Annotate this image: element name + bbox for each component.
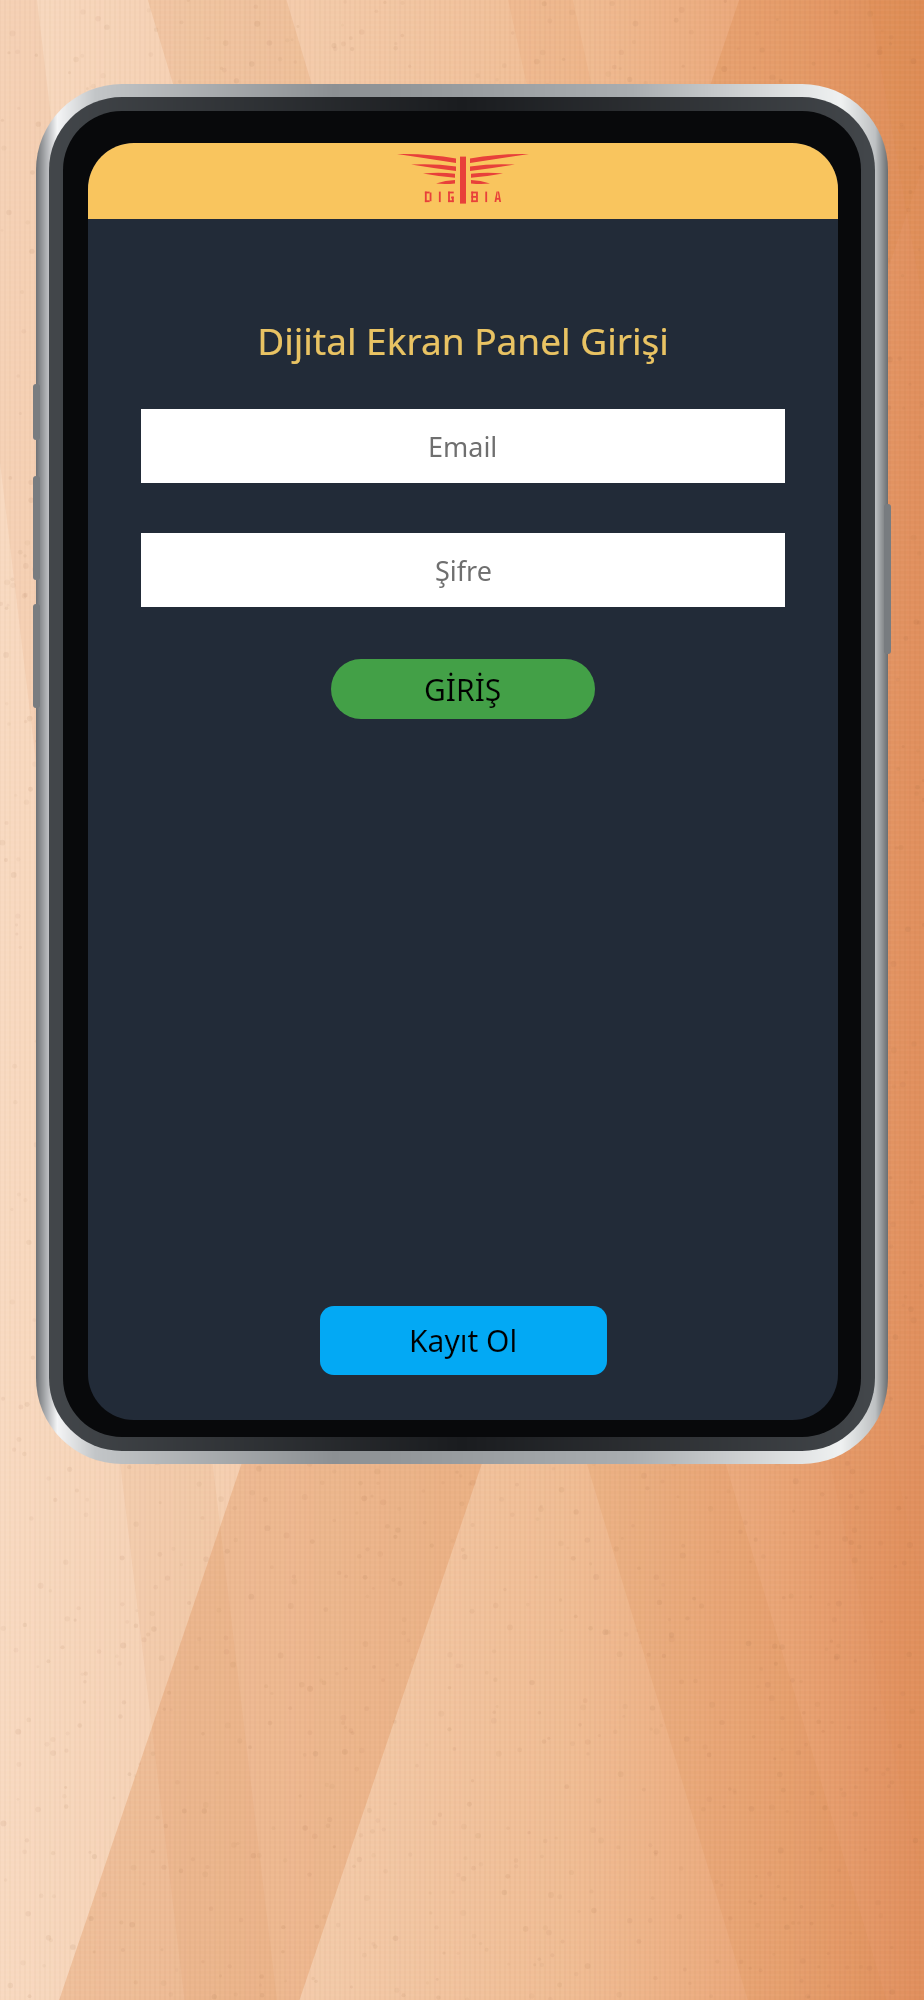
button[interactable]: Şifre — [141, 533, 785, 607]
button[interactable]: GİRİŞ — [331, 659, 595, 719]
staticText: Dijital Ekran Panel Girişi — [257, 315, 669, 365]
other: Digibia logo — [88, 143, 838, 219]
staticText: Şifre — [435, 552, 492, 589]
staticText: GİRİŞ — [424, 669, 502, 710]
button[interactable]: Kayıt Ol — [320, 1306, 607, 1375]
staticText: Email — [428, 428, 498, 465]
staticText: Kayıt Ol — [409, 1320, 518, 1361]
button[interactable]: Email — [141, 409, 785, 483]
